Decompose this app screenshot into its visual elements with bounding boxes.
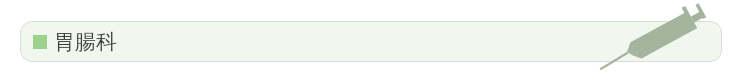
other: Vaccination [0, 0, 743, 83]
button[interactable]: 胃腸科 [20, 21, 722, 62]
staticText: 胃腸科 [54, 29, 117, 55]
